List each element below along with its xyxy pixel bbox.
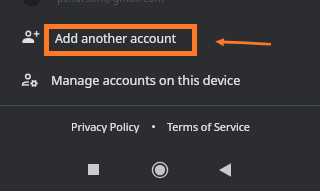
staticText: Terms of Service	[167, 119, 250, 133]
button[interactable]: Home	[145, 155, 175, 185]
button[interactable]: Terms of Service	[165, 117, 252, 135]
button[interactable]: Add another account	[0, 18, 320, 58]
staticText: pcharson@gmail.com	[57, 0, 165, 5]
button[interactable]: Recent apps	[78, 154, 108, 184]
button[interactable]: Manage accounts on this device	[0, 61, 320, 101]
staticText: Manage accounts on this device	[51, 71, 241, 88]
staticText: Add another account	[55, 30, 177, 47]
button[interactable]: pcharson@gmail.com	[0, 0, 320, 13]
button[interactable]: Back	[210, 155, 240, 185]
staticText: Privacy Policy	[71, 119, 140, 133]
button[interactable]: Privacy Policy	[69, 117, 142, 135]
